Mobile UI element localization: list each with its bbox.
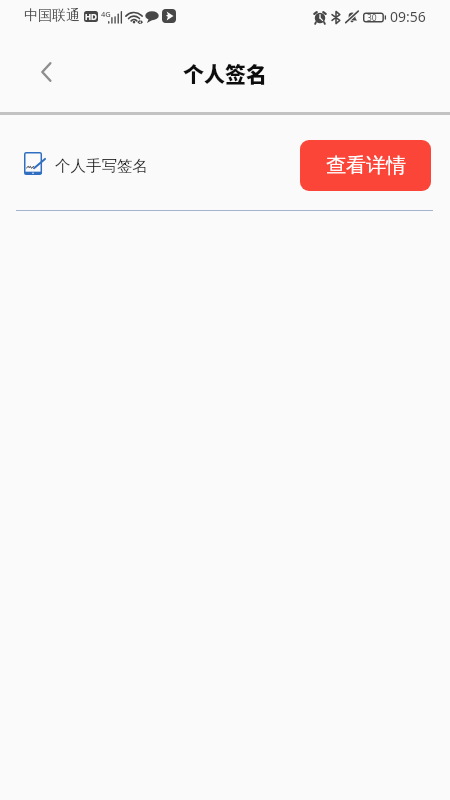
staticText: 30 <box>367 12 377 24</box>
button[interactable]: Back <box>26 52 66 92</box>
staticText: HD <box>85 11 97 22</box>
staticText: 中国联通 <box>24 7 80 25</box>
button[interactable]: 个人手写签名 <box>24 115 300 216</box>
staticText: 个人手写签名 <box>55 156 148 176</box>
staticText: 09:56 <box>390 7 426 26</box>
staticText: 个人签名 <box>183 58 267 88</box>
staticText: 4G <box>101 9 111 19</box>
button[interactable]: 查看详情 <box>300 140 431 191</box>
staticText: 查看详情 <box>326 153 406 178</box>
